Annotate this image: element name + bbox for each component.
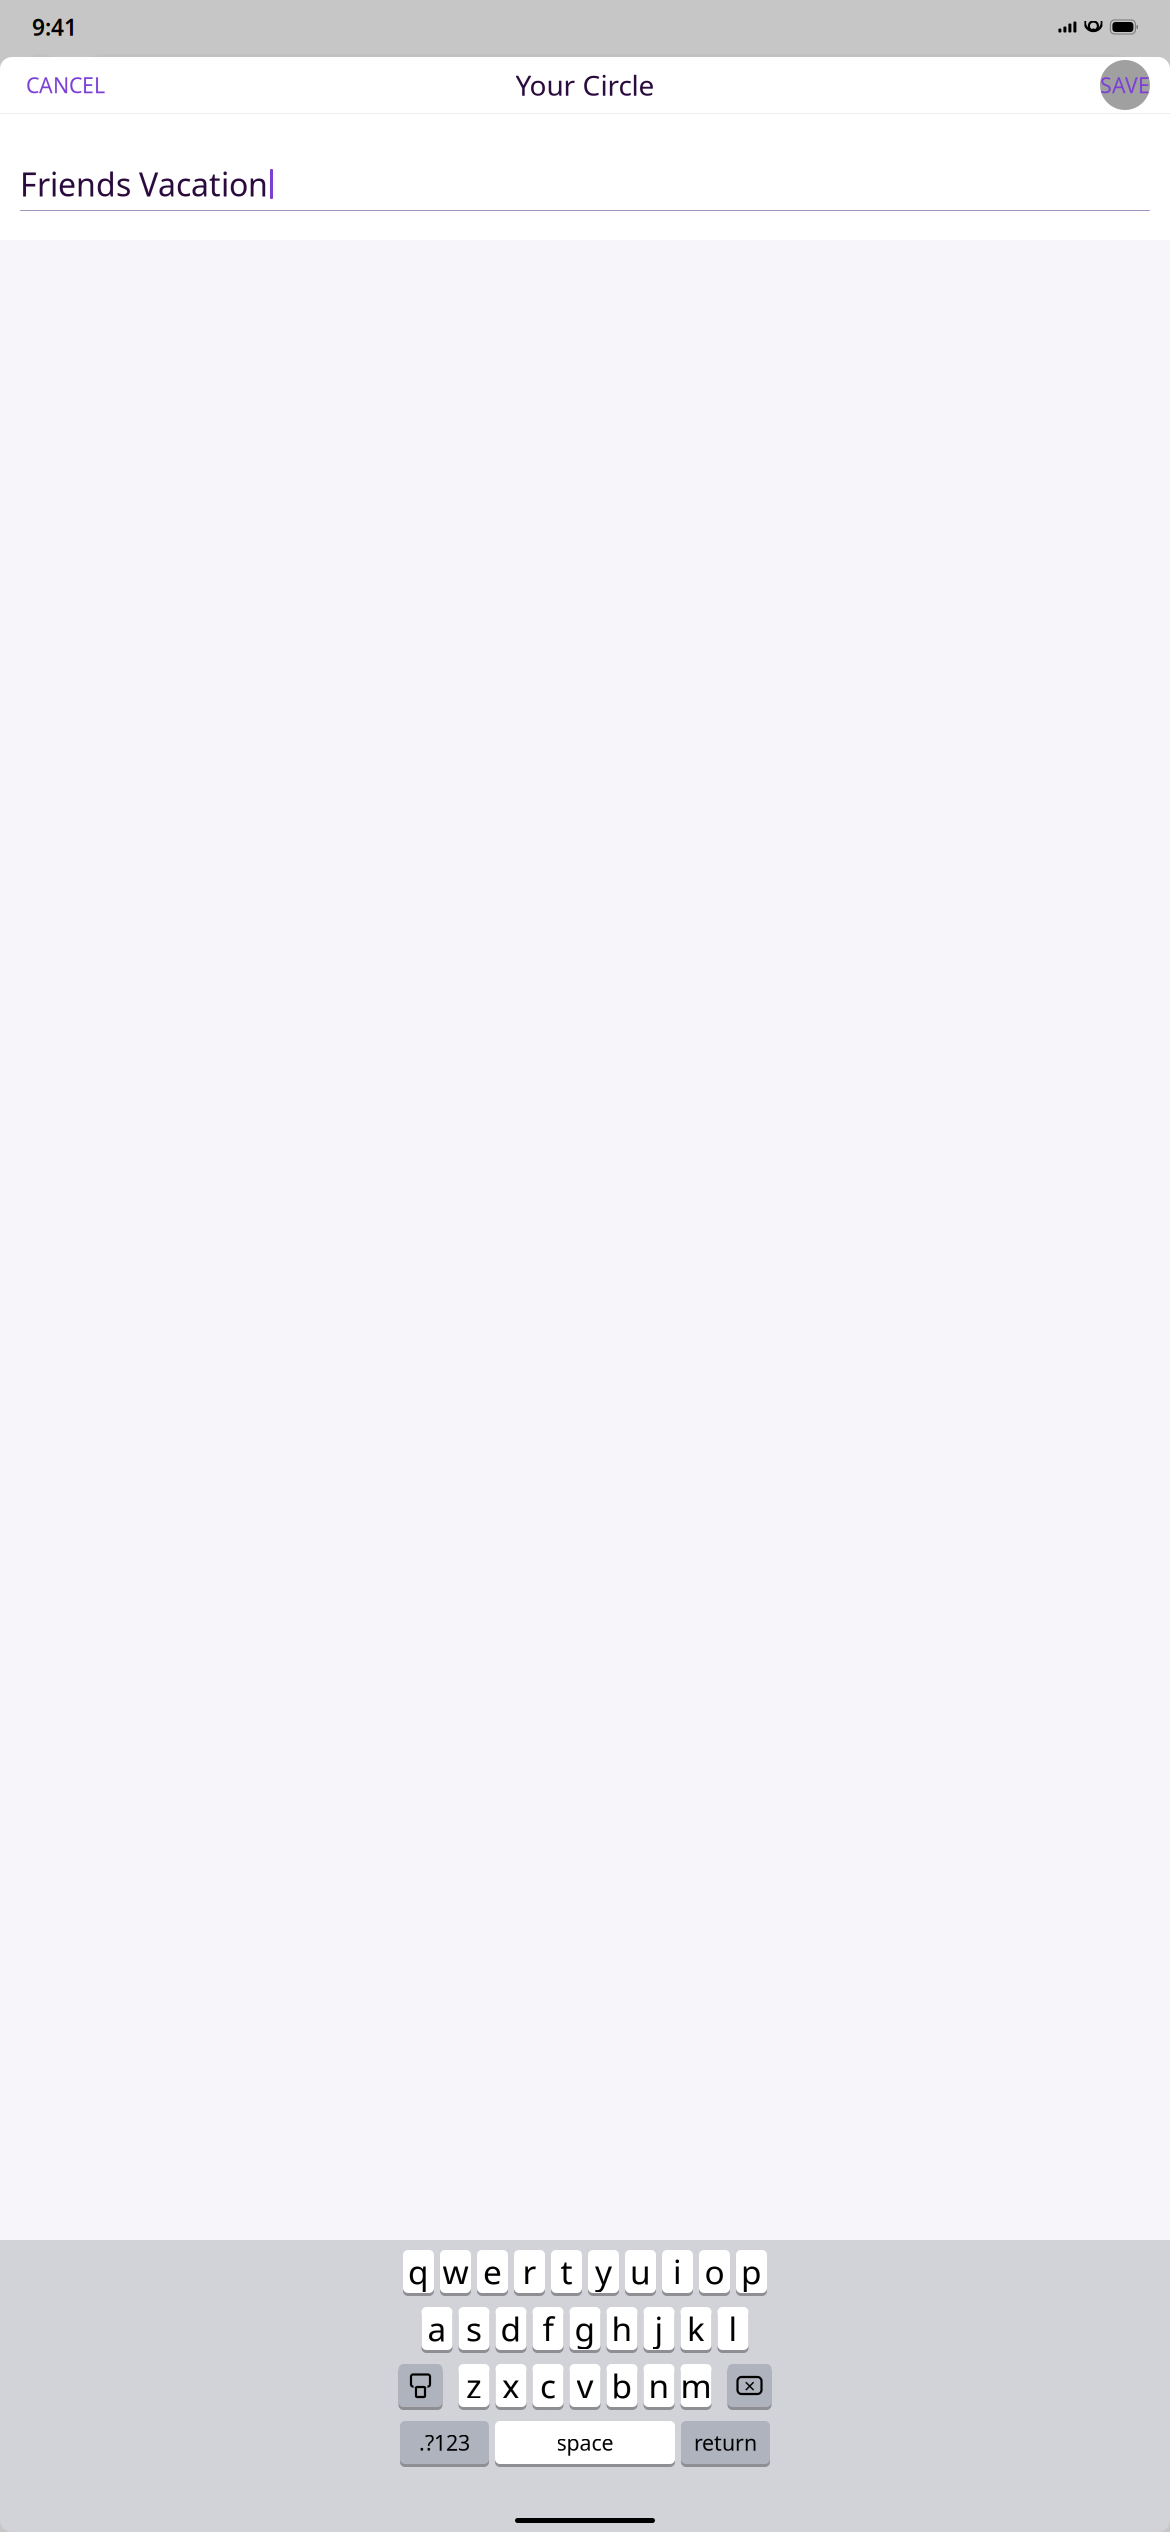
staticText: q <box>408 2249 429 2294</box>
staticText: c <box>540 2363 556 2408</box>
staticText: space <box>556 2428 613 2457</box>
button[interactable]: z <box>458 2364 489 2410</box>
button[interactable]: t <box>551 2250 582 2296</box>
staticText: x <box>502 2363 520 2408</box>
staticText: return <box>694 2428 757 2457</box>
button[interactable]: return <box>681 2421 770 2467</box>
staticText: l <box>728 2306 737 2351</box>
button[interactable]: i <box>662 2250 693 2296</box>
staticText: e <box>483 2249 502 2294</box>
button[interactable]: n <box>643 2364 674 2410</box>
button[interactable]: u <box>625 2250 656 2296</box>
button[interactable]: Delete <box>727 2364 771 2410</box>
staticText: t <box>560 2249 572 2294</box>
button[interactable]: Shift <box>398 2364 442 2410</box>
staticText: Friends Vacation <box>20 163 268 205</box>
button[interactable]: a <box>421 2307 452 2353</box>
staticText: SAVE <box>1100 71 1150 99</box>
staticText: p <box>741 2249 762 2294</box>
staticText: CANCEL <box>26 71 105 99</box>
staticText: × <box>744 2372 755 2399</box>
button[interactable]: w <box>440 2250 471 2296</box>
button[interactable]: v <box>569 2364 600 2410</box>
button[interactable]: s <box>458 2307 489 2353</box>
staticText: j <box>654 2306 663 2351</box>
staticText: y <box>595 2249 612 2294</box>
staticText: v <box>576 2363 593 2408</box>
button[interactable]: e <box>477 2250 508 2296</box>
staticText: s <box>466 2306 482 2351</box>
button[interactable]: p <box>736 2250 767 2296</box>
button[interactable]: .?123 <box>400 2421 489 2467</box>
button[interactable]: q <box>403 2250 434 2296</box>
staticText: 9:41 <box>32 12 77 42</box>
button[interactable]: g <box>569 2307 600 2353</box>
button[interactable]: m <box>680 2364 711 2410</box>
button[interactable]: CANCEL <box>12 61 119 109</box>
staticText: g <box>574 2306 595 2351</box>
button[interactable]: y <box>588 2250 619 2296</box>
staticText: u <box>630 2249 651 2294</box>
button[interactable]: d <box>495 2307 526 2353</box>
button[interactable]: o <box>699 2250 730 2296</box>
button[interactable]: b <box>606 2364 637 2410</box>
button[interactable]: x <box>495 2364 526 2410</box>
staticText: .?123 <box>419 2428 470 2457</box>
button[interactable]: space <box>495 2421 675 2467</box>
button[interactable]: SAVE <box>1092 54 1158 116</box>
button[interactable]: r <box>514 2250 545 2296</box>
staticText: h <box>611 2306 632 2351</box>
button[interactable]: f <box>532 2307 563 2353</box>
staticText: k <box>687 2306 705 2351</box>
button[interactable]: j <box>643 2307 674 2353</box>
staticText: m <box>680 2363 711 2408</box>
button[interactable]: h <box>606 2307 637 2353</box>
staticText: z <box>466 2363 482 2408</box>
button[interactable]: c <box>532 2364 563 2410</box>
staticText: o <box>704 2249 724 2294</box>
staticText: n <box>648 2363 669 2408</box>
button[interactable]: k <box>680 2307 711 2353</box>
staticText: b <box>611 2363 632 2408</box>
staticText: d <box>500 2306 521 2351</box>
staticText: a <box>427 2306 446 2351</box>
staticText: w <box>442 2249 468 2294</box>
staticText: f <box>542 2306 553 2351</box>
staticText: i <box>673 2249 682 2294</box>
staticText: r <box>522 2249 536 2294</box>
button[interactable]: l <box>717 2307 748 2353</box>
staticText: Your Circle <box>515 66 654 104</box>
